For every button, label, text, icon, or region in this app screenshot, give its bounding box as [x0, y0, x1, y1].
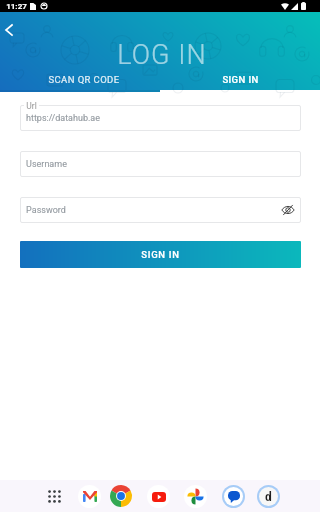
staticText: https://datahub.ae — [26, 113, 100, 124]
button[interactable]: Chrome — [108, 483, 134, 509]
button[interactable]: Password — [20, 197, 301, 223]
staticText: SIGN IN — [141, 249, 180, 260]
button[interactable]: All apps — [41, 483, 67, 509]
staticText: 11:27 — [6, 2, 27, 11]
button[interactable]: Messages — [220, 483, 246, 509]
button[interactable]: Back — [0, 20, 19, 40]
button[interactable]: SCAN QR CODE — [0, 62, 160, 90]
button[interactable]: YouTube — [145, 483, 171, 509]
staticText: Username — [26, 159, 67, 170]
staticText: Password — [26, 205, 66, 216]
button[interactable]: Duo — [255, 483, 281, 509]
staticText: SIGN IN — [222, 74, 259, 85]
staticText: LOG IN — [117, 39, 207, 71]
button[interactable]: SIGN IN — [20, 241, 301, 268]
button[interactable]: Gmail — [76, 483, 102, 509]
button[interactable]: Photos — [182, 483, 208, 509]
button[interactable]: https://datahub.ae — [20, 105, 301, 131]
staticText: SCAN QR CODE — [48, 74, 120, 85]
staticText: d — [265, 490, 272, 504]
button[interactable]: Username — [20, 151, 301, 177]
button[interactable]: SIGN IN — [160, 62, 320, 90]
button[interactable]: Show password — [281, 203, 295, 217]
staticText: Url — [26, 101, 37, 111]
